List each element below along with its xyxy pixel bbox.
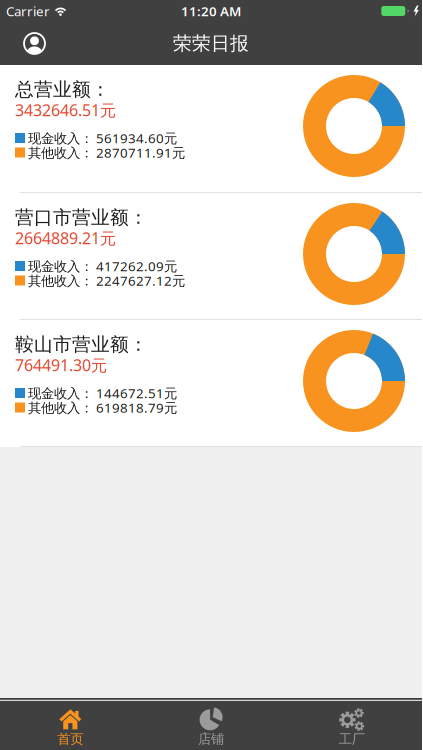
button[interactable]: 用户 — [0, 33, 45, 54]
staticText: 营口市营业额： — [15, 206, 148, 229]
staticText: 首页 — [57, 731, 83, 747]
button[interactable]: 店铺 — [141, 701, 281, 748]
staticText: 现金收入： 561934.60元 — [28, 129, 177, 147]
staticText: 现金收入： 144672.51元 — [28, 384, 177, 402]
staticText: 其他收入： 2870711.91元 — [28, 144, 185, 161]
staticText: 现金收入： 417262.09元 — [28, 257, 177, 275]
staticText: 764491.30元 — [15, 354, 107, 376]
staticText: 其他收入： 2247627.12元 — [28, 272, 185, 289]
button[interactable]: 首页 — [0, 701, 141, 748]
button[interactable]: 营口市营业额： — [0, 193, 422, 319]
button[interactable]: 总营业额： — [0, 65, 422, 192]
staticText: 荣荣日报 — [173, 32, 249, 55]
staticText: 11:20 AM — [181, 2, 241, 20]
staticText: 店铺 — [198, 731, 224, 747]
staticText: 2664889.21元 — [15, 227, 116, 249]
button[interactable]: 鞍山市营业额： — [0, 320, 422, 446]
staticText: 3432646.51元 — [15, 99, 116, 121]
staticText: 鞍山市营业额： — [15, 333, 148, 356]
staticText: 总营业额： — [15, 78, 110, 101]
staticText: Carrier — [6, 2, 50, 20]
staticText: 工厂 — [339, 731, 365, 747]
button[interactable]: 工厂 — [281, 701, 422, 748]
staticText: 其他收入： 619818.79元 — [28, 399, 177, 416]
